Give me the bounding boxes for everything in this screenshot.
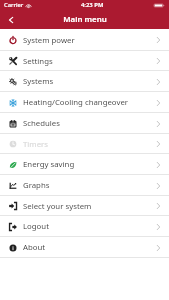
button[interactable]: Logout: [0, 216, 169, 237]
staticText: Timers: [23, 139, 48, 150]
staticText: Graphs: [23, 180, 50, 191]
staticText: 4:23 PM: [81, 1, 104, 9]
staticText: Carrier: [4, 1, 24, 9]
button[interactable]: About: [0, 237, 169, 258]
staticText: About: [23, 242, 46, 253]
button[interactable]: Timers: [0, 134, 169, 154]
staticText: Energy saving: [23, 159, 75, 170]
button[interactable]: Energy saving: [0, 154, 169, 175]
button[interactable]: Systems: [0, 71, 169, 92]
staticText: Main menu: [63, 14, 107, 25]
staticText: System power: [23, 35, 75, 46]
button[interactable]: Graphs: [0, 175, 169, 196]
button[interactable]: Select your system: [0, 196, 169, 216]
staticText: Schedules: [23, 118, 60, 129]
button[interactable]: System power: [0, 29, 169, 51]
staticText: Select your system: [23, 201, 92, 212]
staticText: Logout: [23, 221, 49, 232]
staticText: Heating/Cooling changeover: [23, 97, 128, 108]
button[interactable]: Back: [0, 10, 22, 29]
staticText: Systems: [23, 76, 54, 87]
button[interactable]: Schedules: [0, 113, 169, 134]
staticText: Settings: [23, 56, 53, 67]
button[interactable]: Heating/Cooling changeover: [0, 92, 169, 113]
button[interactable]: Settings: [0, 51, 169, 71]
